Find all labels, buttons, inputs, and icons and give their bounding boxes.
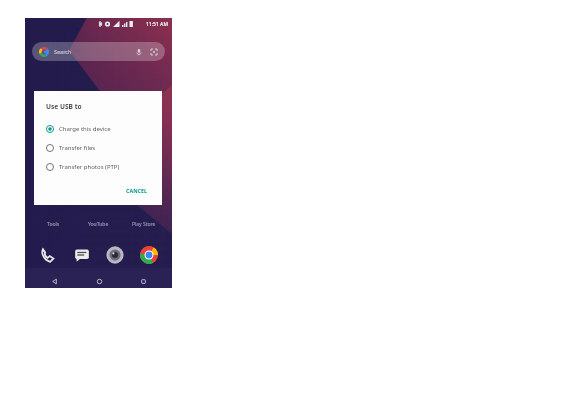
button[interactable]: Home — [84, 274, 114, 288]
button[interactable]: Transfer files — [34, 143, 162, 153]
staticText: Search — [54, 48, 72, 55]
staticText: Tools — [47, 221, 60, 228]
button[interactable]: Chrome — [136, 242, 162, 268]
button[interactable]: Messages — [69, 242, 95, 268]
staticText: CANCEL — [126, 187, 148, 194]
button[interactable]: Google — [32, 42, 165, 61]
button[interactable]: Phone — [35, 242, 61, 268]
staticText: Use USB to — [46, 102, 82, 111]
other: Google Lens — [150, 48, 158, 56]
staticText: Transfer photos (PTP) — [59, 163, 120, 171]
staticText: 11:51 AM — [146, 21, 168, 28]
button[interactable]: Camera — [102, 242, 128, 268]
button[interactable]: YouTube — [76, 221, 121, 228]
button[interactable]: Transfer photos (PTP) — [34, 162, 162, 172]
staticText: Charge this device — [59, 125, 111, 133]
button[interactable]: Tools — [31, 221, 76, 228]
button[interactable]: Recents — [128, 274, 158, 288]
other: Voice search — [135, 48, 143, 56]
staticText: Transfer files — [59, 144, 96, 152]
button[interactable]: Back — [39, 274, 69, 288]
staticText: YouTube — [88, 221, 109, 228]
button[interactable]: Play Store — [121, 221, 166, 228]
button[interactable]: Charge this device — [34, 124, 162, 134]
staticText: Play Store — [132, 221, 156, 228]
other: Google — [39, 47, 49, 57]
button[interactable]: CANCEL — [123, 185, 151, 196]
